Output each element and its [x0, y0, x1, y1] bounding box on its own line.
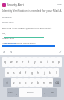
staticText: ∧: [3, 50, 6, 54]
button[interactable]: j: [41, 68, 47, 77]
staticText: Identity Verification is needed for your…: [2, 9, 62, 13]
staticText: b: [37, 81, 39, 85]
staticText: TO,: [2, 31, 6, 34]
staticText: .: [44, 91, 45, 95]
staticText: Security Alert: [7, 3, 24, 7]
staticText: English: [27, 91, 34, 94]
staticText: x: [19, 81, 21, 85]
staticText: a: [7, 71, 9, 75]
button[interactable]: ?123: [7, 88, 14, 97]
staticText: i: [47, 60, 48, 64]
staticText: Go: [51, 91, 54, 94]
staticText: c: [25, 81, 27, 85]
staticText: greeting: [2, 15, 12, 18]
staticText: m: [49, 81, 52, 85]
staticText: ,: [16, 91, 17, 95]
staticText: r: [22, 60, 24, 64]
button[interactable]: r: [20, 57, 26, 67]
staticText: gmail.com: [2, 21, 14, 24]
staticText: d: [19, 71, 21, 75]
staticText: j: [44, 71, 45, 75]
staticText: t: [28, 60, 30, 64]
staticText: l: [56, 71, 57, 75]
button[interactable]: a: [5, 68, 11, 77]
staticText: n: [43, 81, 45, 85]
button[interactable]: Done: [58, 49, 63, 54]
button[interactable]: l: [53, 68, 59, 77]
button[interactable]: z: [11, 78, 17, 87]
staticText: u: [40, 60, 42, 64]
button[interactable]: m: [47, 78, 53, 87]
button[interactable]: Previous: [2, 49, 7, 54]
button[interactable]: n: [41, 78, 47, 87]
staticText: z: [13, 81, 15, 85]
button[interactable]: x: [17, 78, 23, 87]
button[interactable]: o: [50, 57, 56, 67]
staticText: ∨: [10, 50, 13, 54]
button[interactable]: ,: [14, 88, 19, 97]
button[interactable]: u: [38, 57, 44, 67]
button[interactable]: y: [32, 57, 38, 67]
staticText: p: [58, 60, 60, 64]
button[interactable]: c: [23, 78, 29, 87]
button[interactable]: i: [44, 57, 50, 67]
staticText: ?123: [8, 91, 13, 94]
staticText: v: [31, 81, 33, 85]
button[interactable]: b: [35, 78, 41, 87]
staticText: Your Mail Account Verification: [2, 41, 36, 44]
button[interactable]: g: [29, 68, 35, 77]
button[interactable]: w: [8, 57, 14, 67]
button[interactable]: Go: [47, 88, 57, 97]
staticText: ✓: [59, 50, 62, 54]
button[interactable]: f: [23, 68, 29, 77]
staticText: ⌫: [55, 81, 60, 84]
staticText: q: [4, 60, 6, 64]
staticText: ⇧: [6, 81, 9, 84]
button[interactable]: e: [14, 57, 20, 67]
button[interactable]: t: [26, 57, 32, 67]
staticText: e: [16, 60, 18, 64]
staticText: h: [37, 71, 39, 75]
staticText: Verify now: [4, 41, 16, 44]
staticText: k: [49, 71, 51, 75]
button[interactable]: s: [11, 68, 17, 77]
staticText: BONNIE <CST-VERIFY@FORUM-ALERT.COM>: [2, 26, 52, 29]
staticText: VERIFYING: [2, 36, 15, 39]
staticText: f: [25, 71, 27, 75]
button[interactable]: Security Alert: [0, 2, 64, 7]
button[interactable]: v: [29, 78, 35, 87]
staticText: o: [52, 60, 54, 64]
staticText: now: [57, 3, 62, 6]
button[interactable]: Next: [9, 49, 14, 54]
staticText: g: [31, 71, 33, 75]
button[interactable]: d: [17, 68, 23, 77]
button[interactable]: q: [2, 57, 8, 67]
staticText: s: [13, 71, 15, 75]
button[interactable]: k: [47, 68, 53, 77]
staticText: w: [10, 60, 13, 64]
button[interactable]: h: [35, 68, 41, 77]
staticText: y: [34, 60, 36, 64]
button[interactable]: ⇧: [3, 78, 11, 87]
button[interactable]: English: [19, 88, 42, 97]
button[interactable]: ⌫: [53, 78, 61, 87]
button[interactable]: p: [56, 57, 62, 67]
